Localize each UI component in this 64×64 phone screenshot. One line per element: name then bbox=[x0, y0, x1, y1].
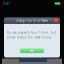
button[interactable]: Close bbox=[54, 18, 58, 23]
staticText: Change the IP or Name bbox=[15, 19, 48, 22]
button[interactable]: Save bbox=[20, 48, 44, 53]
staticText: You can play with Your Pi-hole, but bbox=[7, 31, 56, 35]
staticText: please change the name below. bbox=[7, 36, 52, 39]
staticText: 9:41 bbox=[3, 1, 10, 6]
staticText: Save bbox=[29, 49, 34, 53]
